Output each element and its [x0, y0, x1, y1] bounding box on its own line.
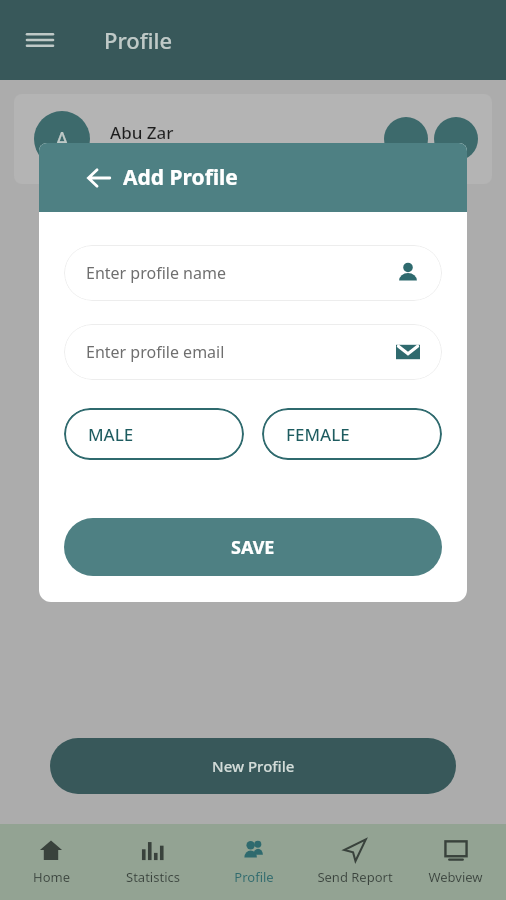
- staticText: A: [55, 124, 70, 154]
- staticText: Enter profile name: [86, 262, 226, 284]
- staticText: Home: [33, 868, 70, 886]
- staticText: SAVE: [231, 535, 275, 560]
- button[interactable]: SAVE: [64, 518, 442, 576]
- staticText: New Profile: [212, 756, 295, 776]
- button[interactable]: Send Report: [304, 824, 405, 900]
- staticText: MALE: [88, 423, 134, 446]
- staticText: Statistics: [126, 868, 180, 886]
- button[interactable]: Webview: [405, 824, 506, 900]
- button[interactable]: Menu: [18, 18, 62, 62]
- button[interactable]: Statistics: [102, 824, 203, 900]
- button[interactable]: Enter profile email: [64, 324, 442, 380]
- staticText: Send Report: [317, 868, 393, 886]
- button[interactable]: Enter profile name: [64, 245, 442, 301]
- staticText: Abu Zar: [110, 121, 174, 144]
- staticText: Enter profile email: [86, 341, 225, 363]
- staticText: FEMALE: [286, 423, 350, 446]
- staticText: Webview: [428, 868, 483, 886]
- button[interactable]: Back: [79, 158, 119, 198]
- staticText: Profile: [234, 868, 274, 886]
- button[interactable]: Home: [0, 824, 102, 900]
- button[interactable]: Profile: [203, 824, 304, 900]
- staticText: Add Profile: [123, 163, 238, 192]
- button[interactable]: MALE: [64, 408, 244, 460]
- button[interactable]: FEMALE: [262, 408, 442, 460]
- staticText: Profile: [104, 25, 173, 55]
- button[interactable]: New Profile: [50, 738, 456, 794]
